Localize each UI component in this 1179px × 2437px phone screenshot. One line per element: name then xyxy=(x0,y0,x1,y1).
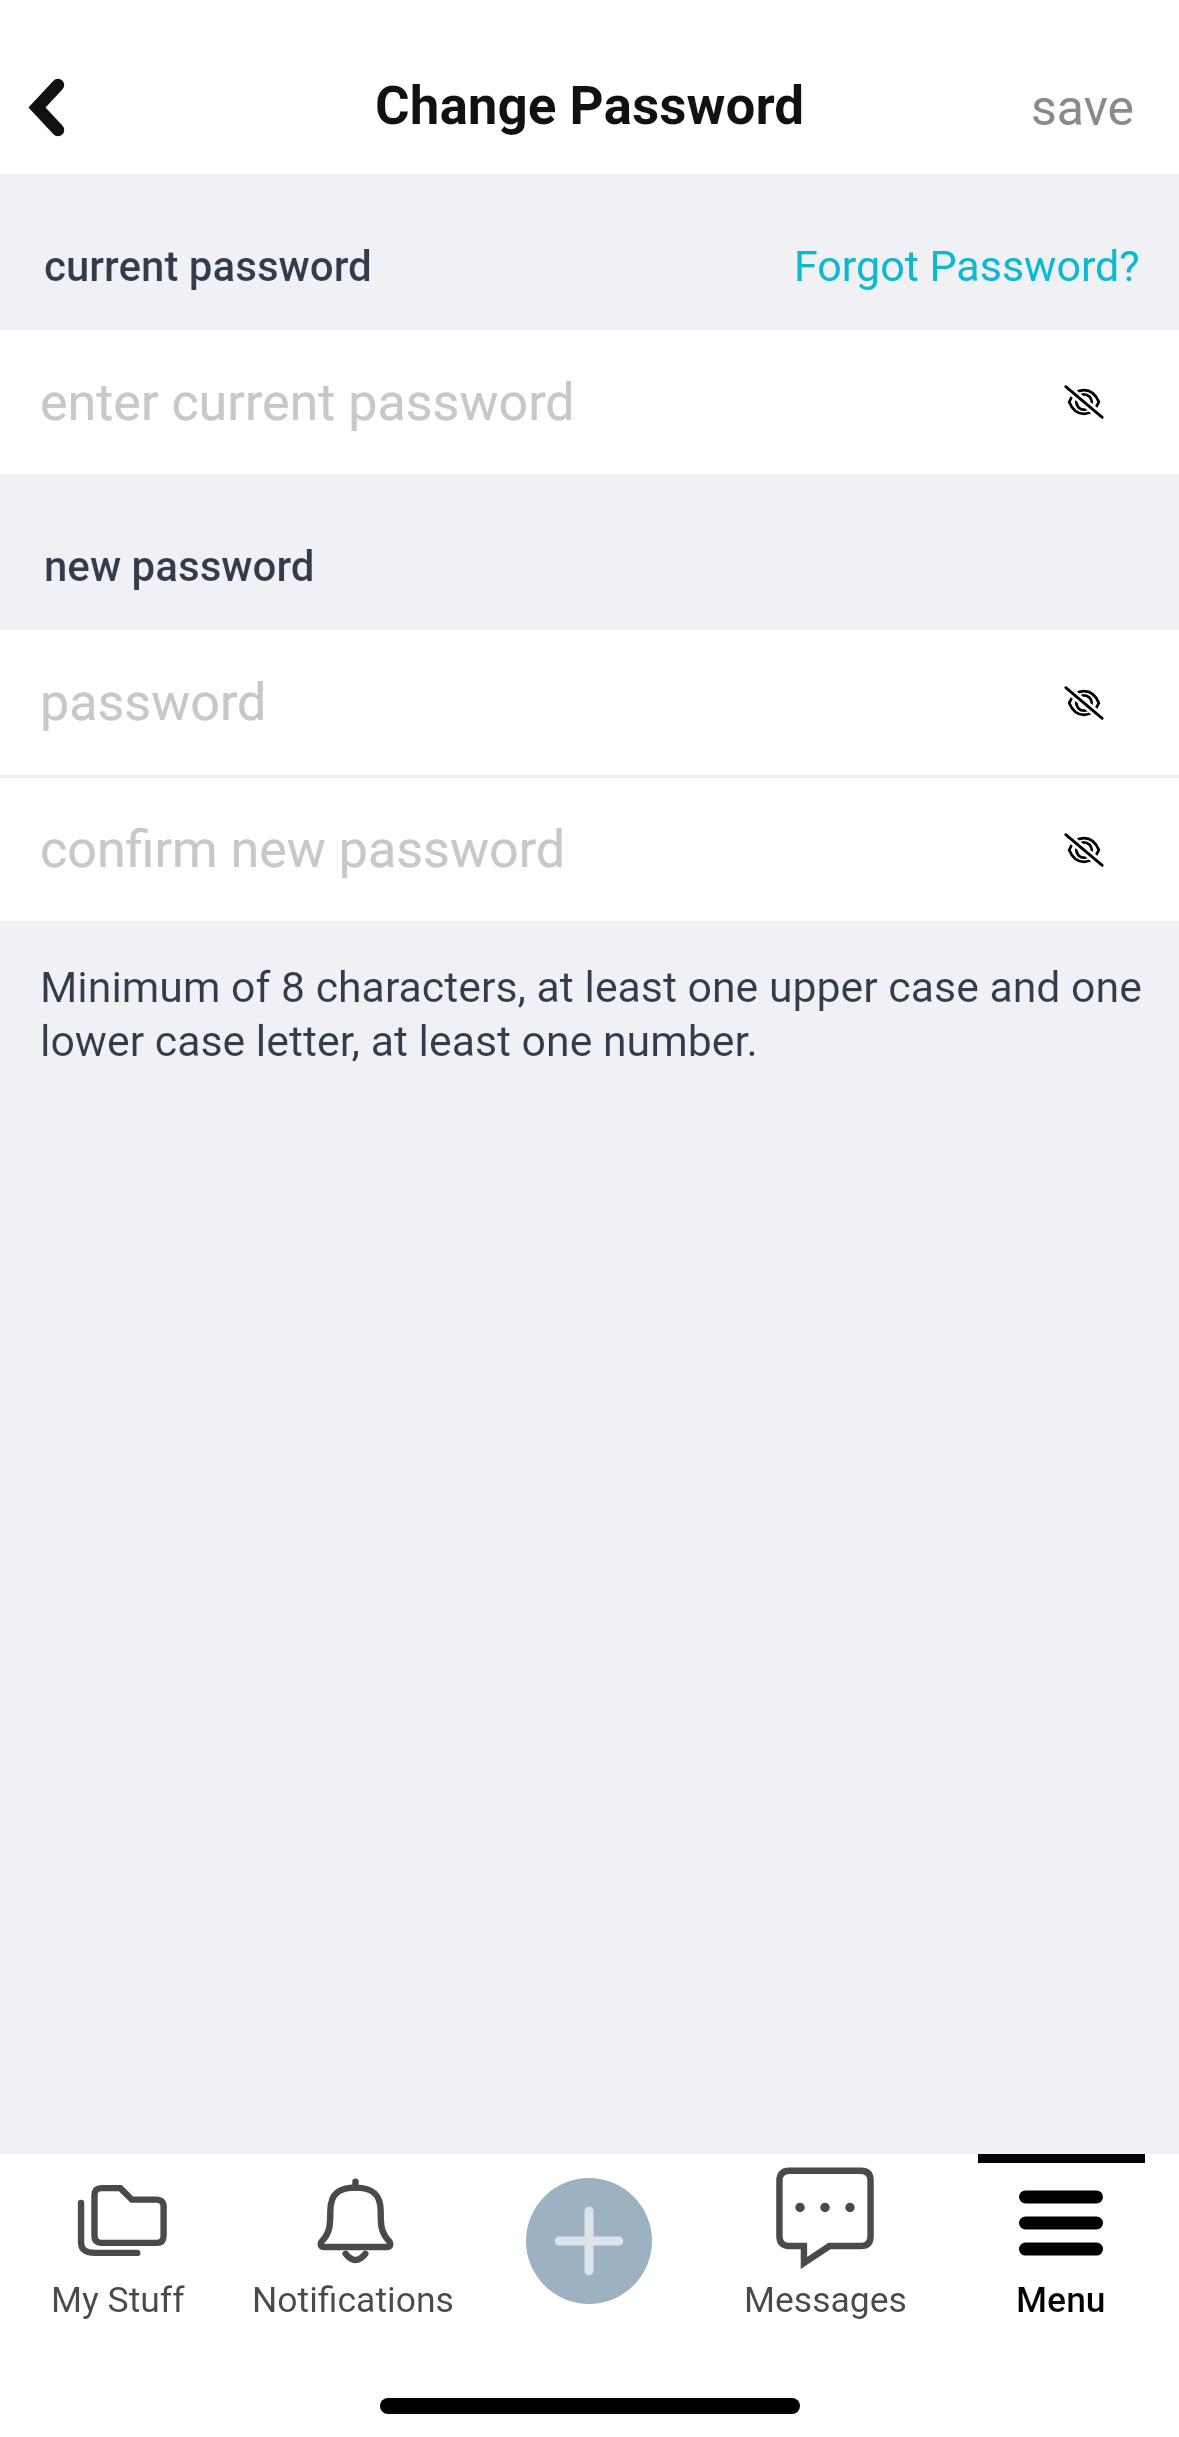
button[interactable]: My Stuff xyxy=(0,2154,235,2437)
button[interactable]: Forgot Password? xyxy=(794,227,1140,277)
staticText: current password xyxy=(44,242,372,291)
button[interactable]: Show password xyxy=(1046,665,1122,741)
staticText: Change Password xyxy=(375,75,805,137)
button[interactable]: Show password xyxy=(1046,364,1122,440)
button[interactable]: Notifications xyxy=(235,2154,471,2437)
button[interactable]: enter current password xyxy=(0,330,1179,474)
button[interactable]: password xyxy=(0,630,1179,775)
staticText: Messages xyxy=(744,2279,907,2321)
staticText: confirm new password xyxy=(40,819,566,880)
staticText: Notifications xyxy=(252,2279,454,2321)
staticText: Menu xyxy=(1016,2279,1106,2321)
button[interactable]: Show password xyxy=(1046,812,1122,888)
staticText: new password xyxy=(44,542,315,591)
staticText: My Stuff xyxy=(51,2279,185,2321)
staticText: Forgot Password? xyxy=(794,241,1140,291)
button[interactable]: Create new xyxy=(471,2154,707,2437)
staticText: enter current password xyxy=(40,372,575,433)
button[interactable]: save xyxy=(991,28,1179,147)
button[interactable]: Menu xyxy=(943,2154,1179,2437)
button[interactable]: confirm new password xyxy=(0,778,1179,921)
button[interactable]: Back xyxy=(0,22,96,152)
staticText: Minimum of 8 characters, at least one up… xyxy=(40,962,1171,1066)
staticText: save xyxy=(1031,79,1135,138)
staticText: password xyxy=(40,672,267,733)
button[interactable]: Messages xyxy=(707,2154,943,2437)
